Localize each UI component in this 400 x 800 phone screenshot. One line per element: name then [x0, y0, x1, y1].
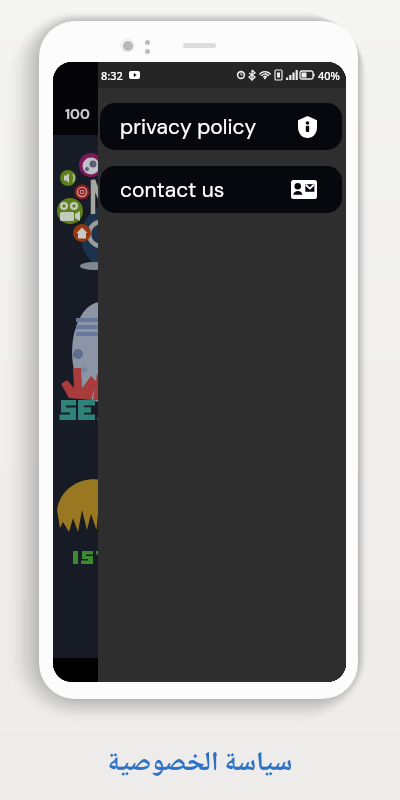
staticText: 40% — [318, 68, 340, 83]
other: Contact us — [291, 180, 317, 199]
staticText: 100 — [65, 105, 90, 123]
other: Privacy policy — [298, 116, 317, 138]
button[interactable]: contact us — [100, 166, 342, 213]
staticText: سياسة الخصوصية — [0, 741, 400, 787]
staticText: privacy policy — [120, 113, 257, 140]
button[interactable]: privacy policy — [100, 103, 342, 150]
staticText: contact us — [120, 176, 225, 203]
staticText: 8:32 — [101, 68, 123, 83]
